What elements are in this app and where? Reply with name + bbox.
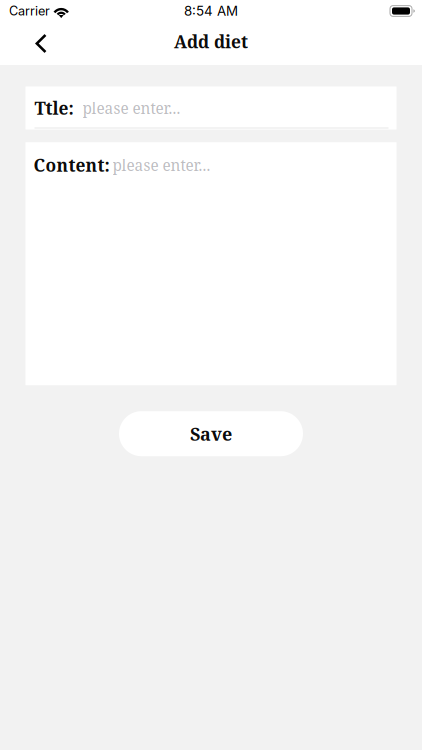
staticText: please enter... bbox=[112, 155, 210, 175]
staticText: Add diet bbox=[174, 30, 248, 53]
staticText: Content: bbox=[33, 153, 109, 177]
button[interactable]: Save bbox=[119, 411, 303, 456]
staticText: 8:54 AM bbox=[184, 3, 238, 19]
button[interactable]: Back bbox=[20, 23, 62, 63]
staticText: please enter... bbox=[82, 98, 180, 118]
staticText: Ttle: bbox=[34, 96, 73, 120]
staticText: Carrier bbox=[9, 3, 50, 19]
staticText: Save bbox=[190, 421, 232, 446]
